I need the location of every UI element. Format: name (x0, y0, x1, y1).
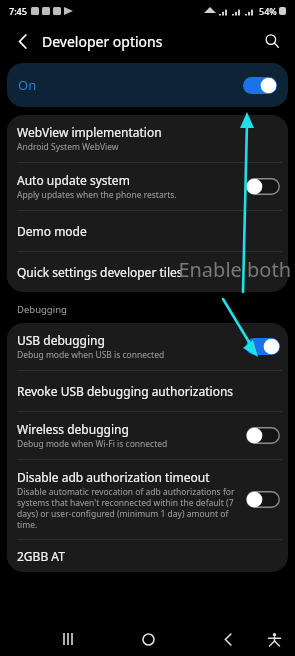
button[interactable]: Quick settings developer tiles (7, 252, 288, 292)
staticText: Debug mode when USB is connected (17, 349, 165, 361)
staticText: 7:45 (9, 5, 27, 17)
staticText: Apply updates when the phone restarts. (17, 189, 177, 201)
staticText: Revoke USB debugging authorizations (17, 383, 234, 399)
staticText: 2GBB AT (17, 548, 65, 564)
staticText: Demo mode (17, 223, 87, 239)
staticText: WebView implementation (17, 124, 162, 140)
staticText: Quick settings developer tiles (17, 264, 183, 280)
staticText: Enable both (178, 256, 291, 283)
staticText: Disable adb authorization timeout (17, 469, 210, 485)
button[interactable]: Back (211, 622, 245, 656)
button[interactable]: Search (259, 28, 285, 54)
button[interactable]: Back (10, 28, 36, 54)
staticText: USB debugging (17, 332, 105, 348)
button[interactable]: Revoke USB debugging authorizations (7, 371, 288, 411)
button[interactable]: Demo mode (7, 211, 288, 251)
staticText: Android System WebView (17, 141, 119, 153)
button[interactable]: Auto update system (7, 163, 288, 210)
button[interactable]: Accessibility (259, 624, 289, 654)
staticText: Debug mode when Wi-Fi is connected (17, 438, 168, 450)
button[interactable]: On (7, 63, 288, 107)
staticText: Auto update system (17, 172, 130, 188)
staticText: Debugging (17, 303, 67, 316)
button[interactable]: WebView implementation (7, 115, 288, 162)
button[interactable]: Home (131, 622, 165, 656)
staticText: 54% (259, 5, 277, 17)
button[interactable]: Recents (52, 622, 86, 656)
button[interactable]: Disable adb authorization timeout (7, 460, 288, 539)
staticText: Developer options (42, 32, 163, 51)
staticText: Disable automatic revocation of adb auth… (17, 486, 240, 530)
button[interactable]: USB debugging (7, 323, 288, 370)
button[interactable]: 2GBB AT (7, 540, 288, 572)
staticText: Wireless debugging (17, 421, 129, 437)
staticText: On (18, 76, 37, 94)
button[interactable]: Wireless debugging (7, 412, 288, 459)
